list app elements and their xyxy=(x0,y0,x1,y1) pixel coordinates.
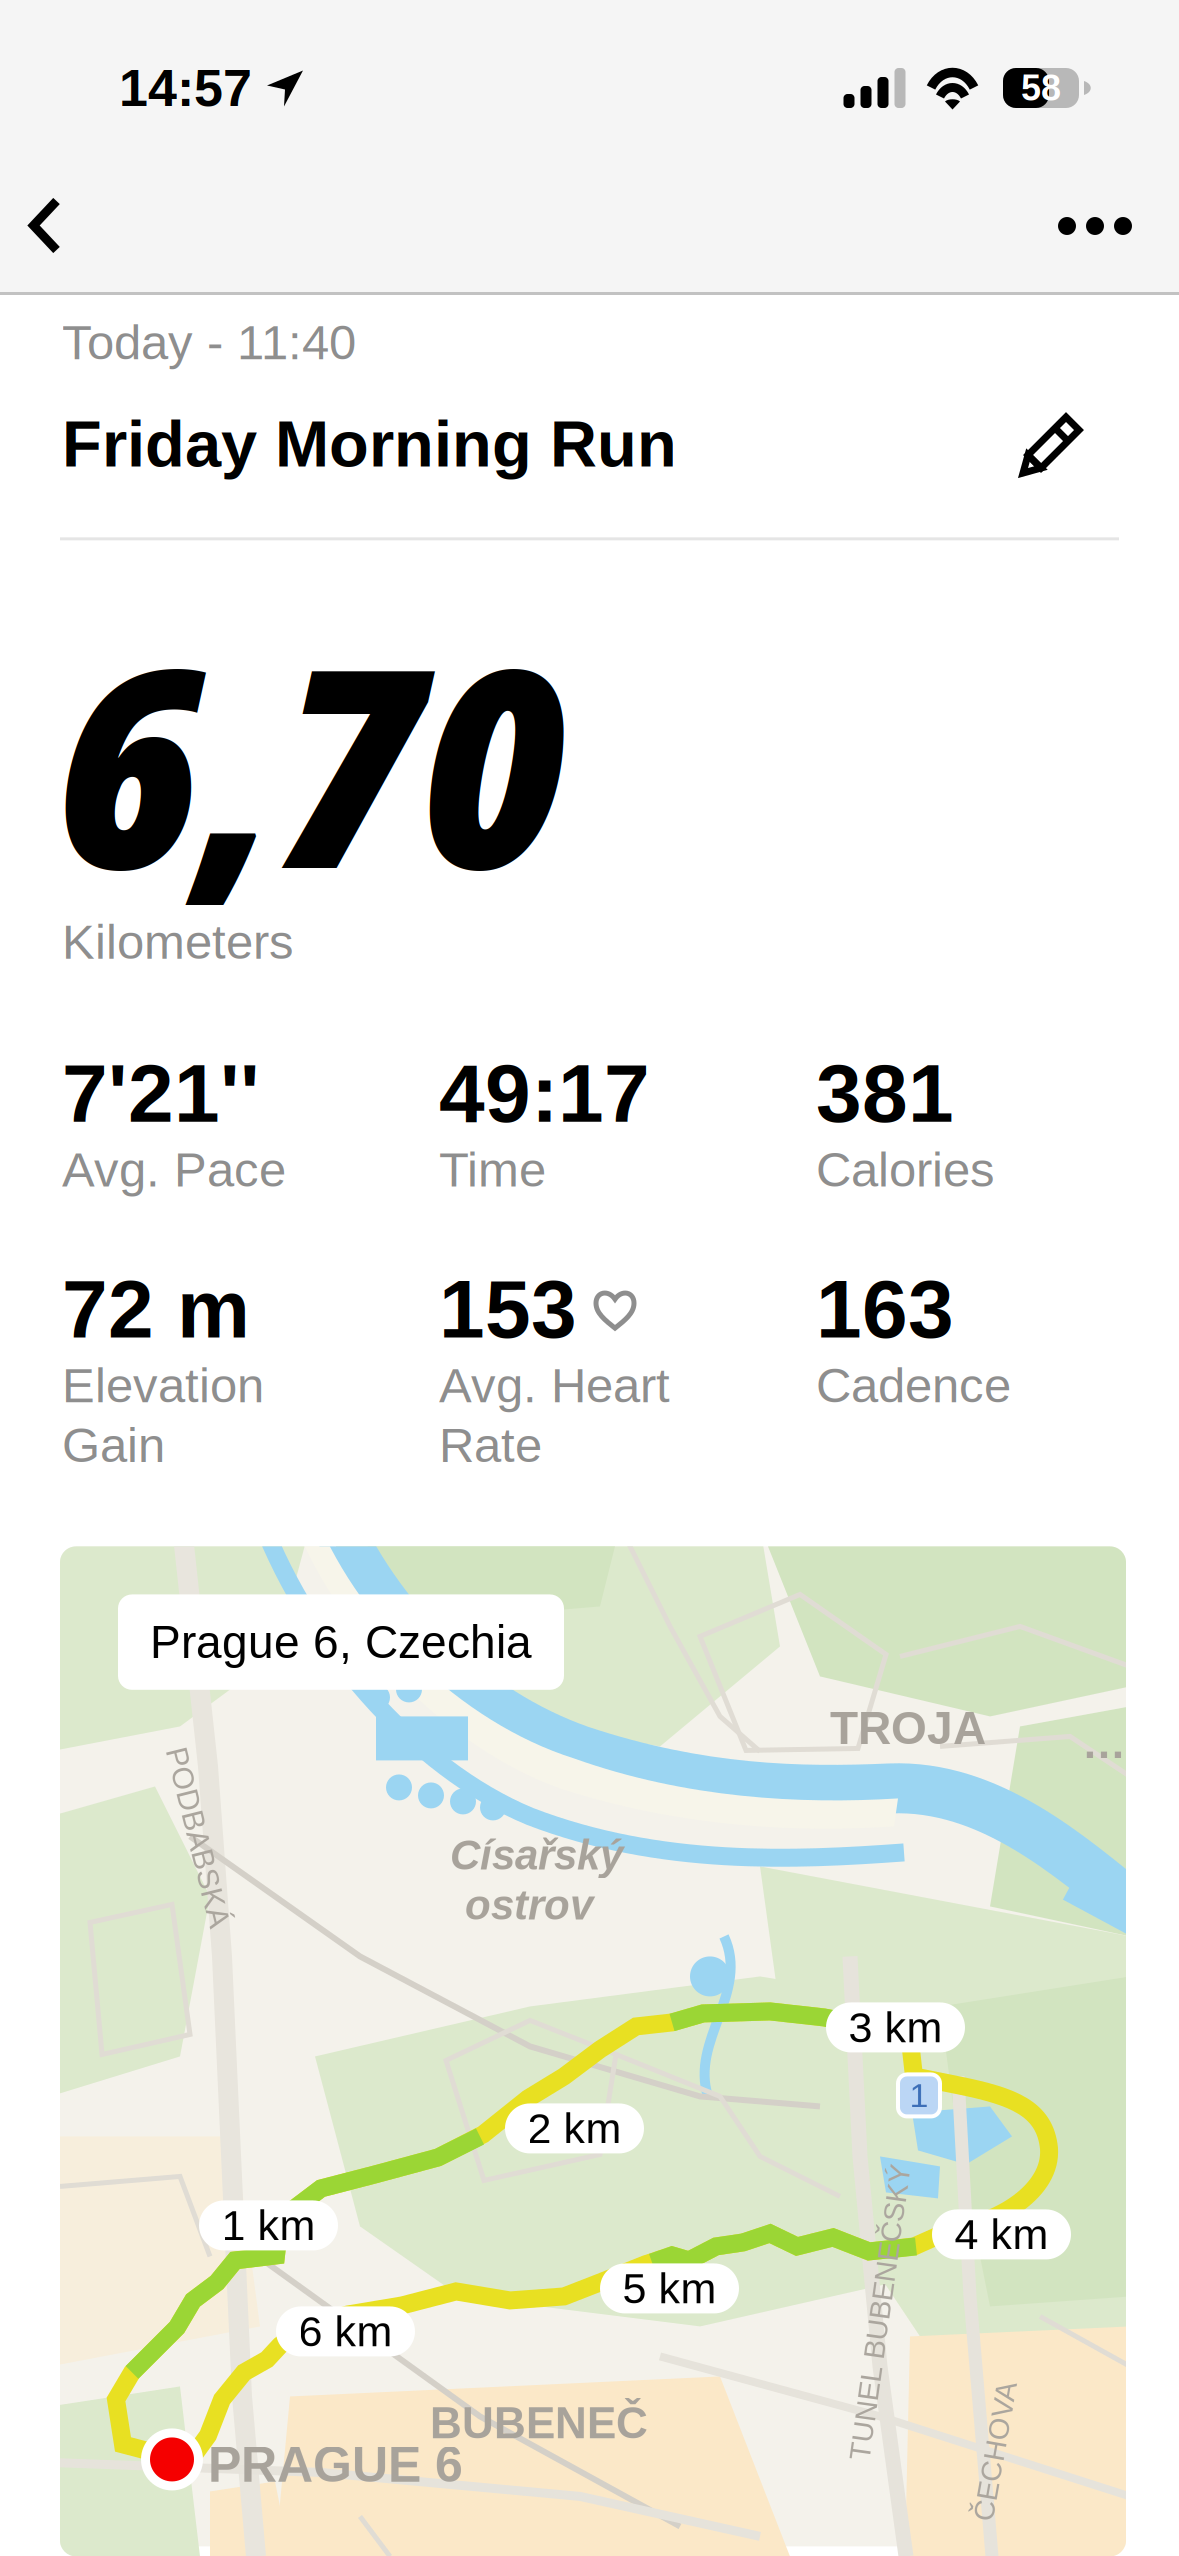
staticText: TUNEL BUBENEČSKÝ xyxy=(731,2296,1029,2329)
staticText: 381 xyxy=(816,1048,954,1139)
staticText: Kilometers xyxy=(62,914,294,969)
staticText: 72 m xyxy=(62,1263,250,1355)
staticText: Elevation xyxy=(62,1358,264,1413)
staticText: PRAGUE 6 xyxy=(208,2436,463,2492)
staticText: Gain xyxy=(62,1418,165,1472)
staticText: TRO xyxy=(1082,1718,1126,1768)
staticText: 49:17 xyxy=(439,1048,650,1139)
staticText: Cadence xyxy=(816,1358,1011,1413)
staticText: 2 km xyxy=(527,2104,621,2152)
staticText: 3 km xyxy=(848,2003,942,2051)
staticText: Rate xyxy=(439,1418,542,1472)
staticText: TROJA xyxy=(830,1702,986,1754)
button[interactable]: Edit run name xyxy=(1022,412,1179,476)
staticText: Time xyxy=(439,1142,546,1197)
staticText: PODBABSKÁ xyxy=(105,1821,290,1854)
button[interactable]: Back xyxy=(0,168,89,255)
staticText: 58 xyxy=(1021,68,1061,108)
staticText: BUBENEČ xyxy=(430,2398,648,2448)
staticText: Today - 11:40 xyxy=(62,315,356,370)
staticText: 14:57 xyxy=(119,59,252,117)
staticText: ČECHOVA xyxy=(924,2435,1065,2468)
staticText: 6 km xyxy=(298,2307,392,2355)
staticText: Avg. Heart xyxy=(439,1358,670,1413)
staticText: Calories xyxy=(816,1142,995,1197)
staticText: 1 xyxy=(909,2076,928,2114)
staticText: Císařský xyxy=(450,1831,623,1878)
staticText: 6,70 xyxy=(56,574,565,948)
staticText: Prague 6, Czechia xyxy=(150,1616,532,1668)
staticText: 4 km xyxy=(954,2210,1048,2258)
staticText: 7'21'' xyxy=(62,1048,260,1139)
staticText: Avg. Pace xyxy=(62,1142,286,1197)
staticText: 153 xyxy=(439,1263,577,1355)
staticText: 163 xyxy=(816,1263,954,1355)
staticText: 5 km xyxy=(622,2264,716,2312)
staticText: ostrov xyxy=(465,1881,593,1928)
staticText: 1 km xyxy=(221,2201,315,2249)
staticText: Friday Morning Run xyxy=(62,408,677,480)
button[interactable]: More options xyxy=(1034,168,1156,235)
